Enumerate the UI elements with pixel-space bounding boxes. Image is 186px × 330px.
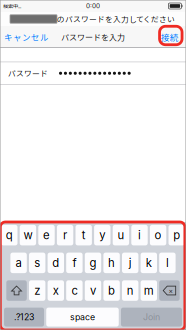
button[interactable]: Join bbox=[121, 308, 182, 327]
button[interactable]: u bbox=[113, 225, 129, 245]
staticText: g bbox=[89, 256, 96, 270]
staticText: c bbox=[71, 284, 77, 297]
staticText: j bbox=[129, 256, 132, 270]
button[interactable]: 接続 bbox=[154, 26, 186, 48]
staticText: r bbox=[63, 228, 67, 242]
button[interactable]: キャンセル bbox=[0, 26, 55, 48]
staticText: k bbox=[146, 256, 152, 270]
button[interactable]: h bbox=[103, 253, 120, 273]
button[interactable]: l bbox=[159, 253, 176, 273]
button[interactable]: e bbox=[38, 225, 55, 245]
staticText: m bbox=[144, 284, 154, 297]
button[interactable]: Shift bbox=[6, 280, 27, 301]
button[interactable]: x bbox=[48, 280, 64, 301]
staticText: のパスワードを入力してください bbox=[57, 13, 175, 24]
staticText: u bbox=[117, 228, 124, 242]
staticText: y bbox=[99, 228, 105, 242]
button[interactable]: s bbox=[29, 253, 45, 273]
staticText: Join bbox=[143, 312, 160, 322]
staticText: n bbox=[127, 284, 134, 297]
staticText: 0:00 bbox=[86, 2, 100, 10]
button[interactable]: c bbox=[66, 280, 83, 301]
button[interactable]: j bbox=[122, 253, 138, 273]
button[interactable]: k bbox=[141, 253, 157, 273]
staticText: o bbox=[155, 228, 162, 242]
staticText: パスワード bbox=[8, 68, 48, 79]
staticText: p bbox=[173, 228, 180, 242]
staticText: d bbox=[52, 256, 59, 270]
button[interactable]: .?123 bbox=[4, 308, 44, 327]
staticText: 接続 bbox=[161, 31, 179, 43]
button[interactable]: p bbox=[168, 225, 185, 245]
button[interactable]: b bbox=[103, 280, 120, 301]
staticText: e bbox=[43, 228, 50, 242]
button[interactable]: a bbox=[10, 253, 27, 273]
staticText: q bbox=[6, 228, 13, 242]
button[interactable]: space bbox=[46, 308, 119, 327]
staticText: space bbox=[70, 312, 95, 322]
staticText: x bbox=[53, 284, 59, 297]
button[interactable]: v bbox=[85, 280, 101, 301]
button[interactable]: d bbox=[48, 253, 64, 273]
button[interactable]: w bbox=[20, 225, 36, 245]
button[interactable]: y bbox=[94, 225, 110, 245]
staticText: i bbox=[138, 228, 141, 242]
button[interactable]: Delete bbox=[159, 280, 180, 301]
button[interactable]: o bbox=[150, 225, 166, 245]
staticText: .?123 bbox=[14, 312, 34, 322]
staticText: w bbox=[23, 228, 32, 242]
staticText: b bbox=[108, 284, 115, 297]
staticText: h bbox=[108, 256, 115, 270]
staticText: v bbox=[90, 284, 96, 297]
staticText: t bbox=[82, 228, 86, 242]
staticText: 検索中... bbox=[3, 2, 21, 10]
staticText: × bbox=[168, 286, 173, 295]
staticText: a bbox=[16, 256, 22, 270]
staticText: l bbox=[166, 256, 169, 270]
button[interactable]: m bbox=[141, 280, 157, 301]
staticText: s bbox=[34, 256, 40, 270]
button[interactable]: q bbox=[1, 225, 17, 245]
button[interactable]: i bbox=[131, 225, 148, 245]
button[interactable]: f bbox=[66, 253, 83, 273]
button[interactable]: z bbox=[29, 280, 45, 301]
button[interactable]: g bbox=[85, 253, 101, 273]
button[interactable]: t bbox=[75, 225, 92, 245]
button[interactable]: n bbox=[122, 280, 138, 301]
staticText: キャンセル bbox=[4, 31, 49, 43]
staticText: パスワードを入力 bbox=[61, 31, 125, 43]
staticText: z bbox=[34, 284, 40, 297]
staticText: f bbox=[72, 256, 76, 270]
button[interactable]: r bbox=[57, 225, 73, 245]
